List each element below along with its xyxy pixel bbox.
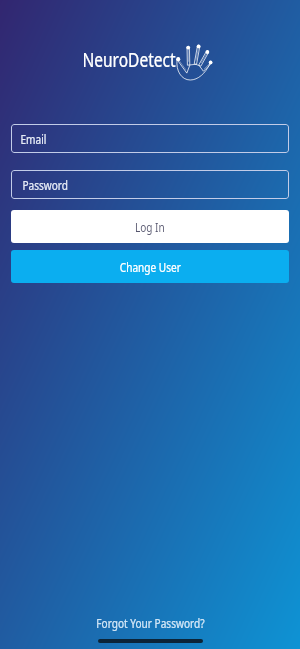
button[interactable]: Log In [11, 210, 289, 243]
button[interactable]: Change User [11, 250, 289, 283]
button[interactable]: Password [11, 170, 289, 199]
staticText: Forgot Your Password? [96, 615, 205, 631]
other: NeuroDetect logo [175, 42, 215, 82]
button[interactable]: Email [11, 124, 289, 153]
staticText: Log In [135, 219, 165, 235]
staticText: Email [20, 131, 46, 147]
staticText: Password [22, 177, 69, 193]
staticText: Change User [120, 259, 181, 275]
staticText: NeuroDetect [82, 46, 175, 73]
button[interactable]: Forgot Your Password? [72, 612, 229, 634]
